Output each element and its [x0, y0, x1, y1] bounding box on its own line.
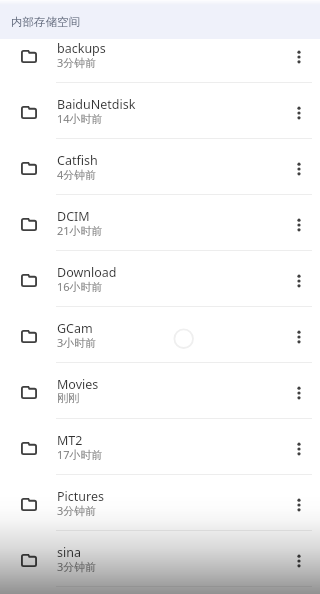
- staticText: 21小时前: [57, 223, 103, 238]
- button[interactable]: GCam: [0, 307, 320, 363]
- button[interactable]: Pictures: [0, 475, 320, 531]
- button[interactable]: backups: [0, 27, 320, 83]
- staticText: 3分钟前: [57, 559, 97, 574]
- button[interactable]: More options: [278, 419, 320, 474]
- staticText: 3分钟前: [57, 55, 97, 70]
- button[interactable]: More options: [278, 475, 320, 530]
- button[interactable]: More options: [278, 195, 320, 250]
- button[interactable]: More options: [278, 83, 320, 138]
- staticText: 3小时前: [57, 335, 97, 350]
- button[interactable]: Catfish: [0, 139, 320, 195]
- staticText: 刚刚: [57, 391, 79, 405]
- staticText: 16小时前: [57, 279, 103, 294]
- staticText: 17小时前: [57, 447, 103, 462]
- staticText: backups: [57, 40, 106, 57]
- staticText: sina: [57, 544, 81, 561]
- button[interactable]: More options: [278, 139, 320, 194]
- staticText: MT2: [57, 432, 83, 449]
- button[interactable]: More options: [278, 27, 320, 82]
- staticText: 内部存储空间: [11, 15, 80, 29]
- button[interactable]: sina: [0, 531, 320, 587]
- button[interactable]: More options: [278, 307, 320, 362]
- staticText: Pictures: [57, 488, 104, 505]
- button[interactable]: Movies: [0, 363, 320, 419]
- button[interactable]: MT2: [0, 419, 320, 475]
- button[interactable]: More options: [278, 363, 320, 418]
- button[interactable]: BaiduNetdisk: [0, 83, 320, 139]
- staticText: 3分钟前: [57, 503, 97, 518]
- staticText: BaiduNetdisk: [57, 96, 136, 113]
- staticText: Catfish: [57, 152, 98, 169]
- staticText: DCIM: [57, 208, 90, 225]
- button[interactable]: More options: [278, 531, 320, 586]
- staticText: Download: [57, 264, 117, 281]
- staticText: 14小时前: [57, 111, 103, 126]
- staticText: 4分钟前: [57, 167, 97, 182]
- staticText: GCam: [57, 320, 93, 337]
- button[interactable]: DCIM: [0, 195, 320, 251]
- staticText: Movies: [57, 376, 99, 393]
- button[interactable]: Download: [0, 251, 320, 307]
- button[interactable]: More options: [278, 251, 320, 306]
